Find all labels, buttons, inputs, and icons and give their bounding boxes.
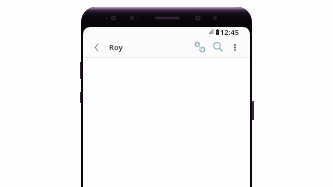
button[interactable]: Search <box>210 39 226 55</box>
staticText: 12:45 <box>220 27 239 36</box>
staticText: Roy <box>109 42 123 52</box>
button[interactable]: Back <box>89 40 103 54</box>
button[interactable]: More options <box>228 40 242 54</box>
button[interactable]: Call <box>192 39 208 55</box>
